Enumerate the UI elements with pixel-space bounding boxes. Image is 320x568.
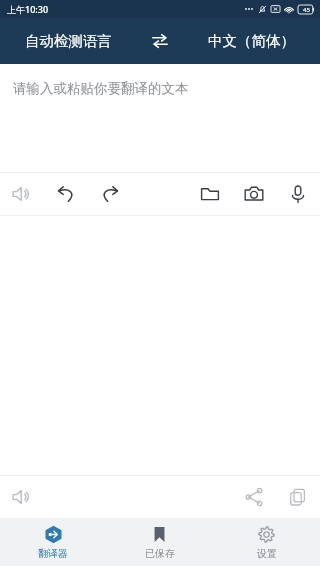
button[interactable]: Camera <box>232 173 276 215</box>
button[interactable]: Share <box>232 476 276 518</box>
button[interactable]: 自动检测语言 <box>0 18 137 64</box>
staticText: 上午10:30 <box>7 3 49 15</box>
button[interactable]: Listen translation <box>0 476 44 518</box>
button[interactable]: Voice input <box>276 173 320 215</box>
button[interactable]: Listen <box>0 173 44 215</box>
staticText: 已保存 <box>145 547 175 560</box>
button[interactable]: Copy <box>276 476 320 518</box>
button[interactable]: Redo <box>88 173 132 215</box>
button[interactable]: Swap languages <box>137 18 183 64</box>
button[interactable]: 翻译器 <box>0 518 106 566</box>
staticText: 翻译器 <box>38 547 68 560</box>
button[interactable]: 请输入或粘贴你要翻译的文本 <box>0 64 320 172</box>
staticText: 45 <box>303 6 310 14</box>
button[interactable]: 设置 <box>213 518 320 566</box>
button[interactable]: 已保存 <box>106 518 213 566</box>
button[interactable]: 中文（简体） <box>183 18 320 64</box>
staticText: 中文（简体） <box>208 32 295 50</box>
staticText: 自动检测语言 <box>25 32 112 50</box>
staticText: 设置 <box>257 547 277 560</box>
button[interactable]: Documents <box>188 173 232 215</box>
button[interactable]: Undo <box>44 173 88 215</box>
staticText: 请输入或粘贴你要翻译的文本 <box>13 80 189 97</box>
